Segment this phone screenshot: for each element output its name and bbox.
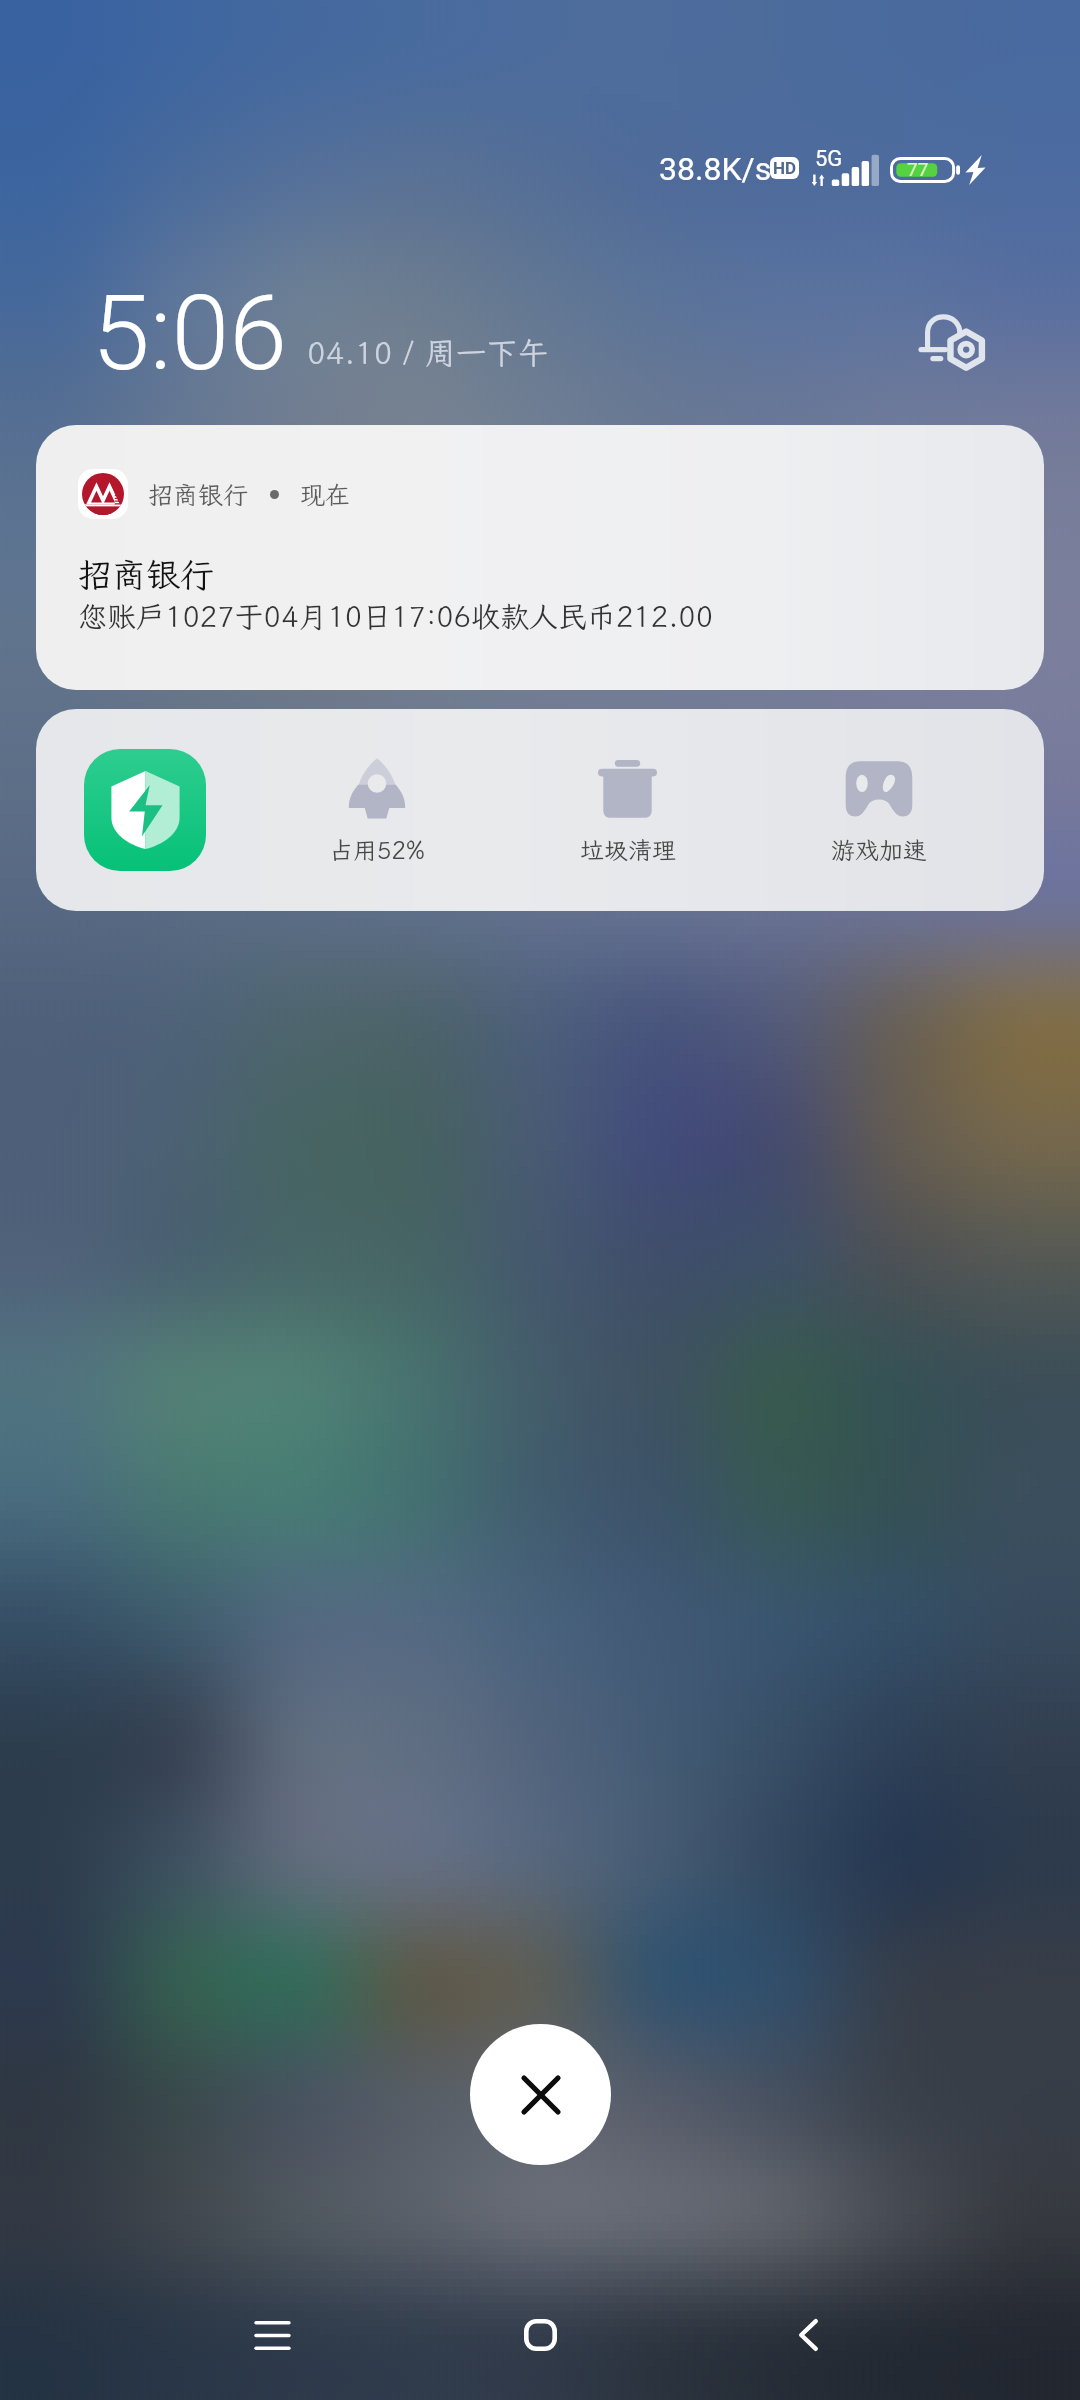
staticText: 您账户1027于04月10日17:06收款人民币212.00: [78, 597, 714, 635]
button[interactable]: Do not disturb: [904, 292, 1000, 388]
button[interactable]: 游戏加速: [753, 709, 1004, 911]
button[interactable]: Back: [736, 2270, 880, 2400]
staticText: 04.10 / 周一下午: [307, 332, 549, 373]
staticText: 现在: [300, 478, 351, 511]
staticText: 游戏加速: [831, 834, 927, 866]
staticText: 38.8K/s: [659, 150, 772, 188]
staticText: 垃圾清理: [580, 834, 676, 866]
button[interactable]: 占用52%: [252, 709, 502, 911]
button[interactable]: 垃圾清理: [502, 709, 753, 911]
button[interactable]: Recents: [200, 2270, 344, 2400]
button[interactable]: Home: [468, 2270, 612, 2400]
staticText: 5:06: [92, 273, 287, 395]
button[interactable]: Close: [470, 2024, 611, 2165]
staticText: 招商银行: [148, 478, 249, 511]
staticText: 招商银行: [78, 552, 214, 597]
staticText: 占用52%: [329, 834, 425, 866]
staticText: 5G: [815, 146, 843, 172]
staticText: 77: [907, 158, 929, 180]
button[interactable]: Security scan: [84, 749, 206, 871]
button[interactable]: 招商银行: [36, 425, 1044, 690]
staticText: HD: [773, 158, 797, 178]
